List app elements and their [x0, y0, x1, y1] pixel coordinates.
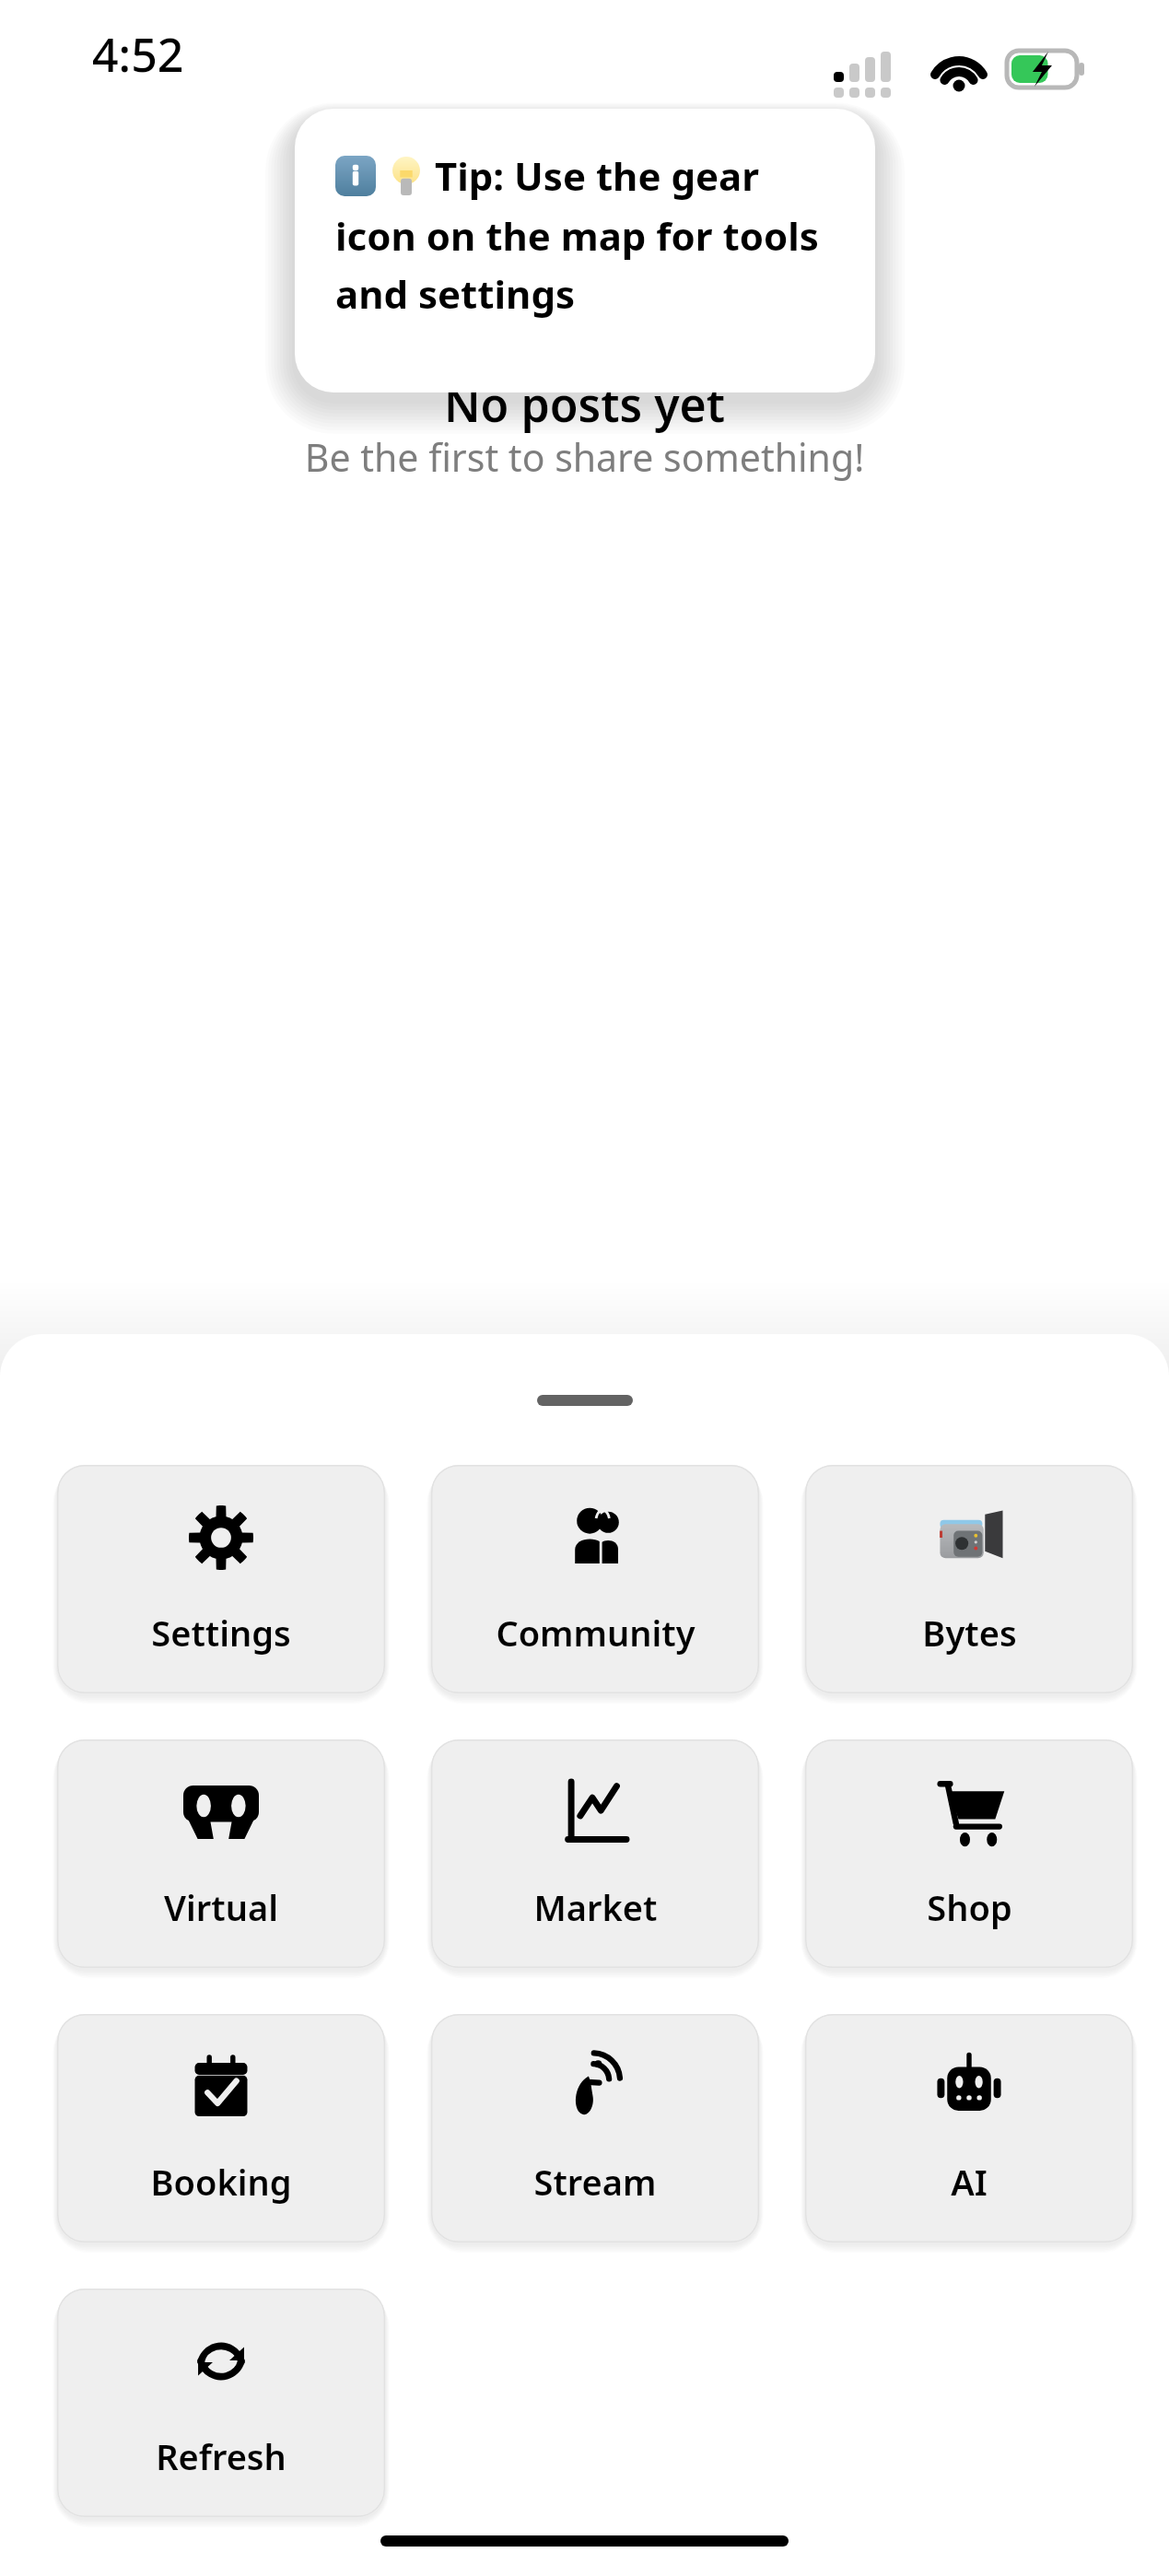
button[interactable]: Tip: Use the gear — [295, 109, 875, 392]
button[interactable]: Bytes — [805, 1465, 1133, 1693]
button[interactable]: Shop — [805, 1739, 1133, 1968]
staticText: Shop — [927, 1883, 1012, 1931]
staticText: Community — [496, 1609, 696, 1657]
staticText: AI — [951, 2158, 988, 2206]
staticText: Bytes — [922, 1609, 1017, 1657]
staticText: and settings — [335, 267, 576, 320]
staticText: Booking — [150, 2158, 292, 2206]
staticText: No posts yet — [0, 373, 1169, 436]
button[interactable]: Virtual — [57, 1739, 385, 1968]
staticText: Market — [533, 1883, 658, 1931]
button[interactable]: AI — [805, 2014, 1133, 2242]
staticText: Be the first to share something! — [0, 431, 1169, 483]
staticText: Refresh — [156, 2432, 286, 2480]
staticText: Stream — [533, 2158, 657, 2206]
staticText: Settings — [151, 1609, 291, 1657]
button[interactable]: Booking — [57, 2014, 385, 2242]
button[interactable]: Stream — [431, 2014, 759, 2242]
button[interactable]: Drag handle — [537, 1395, 633, 1406]
button[interactable]: Settings — [57, 1465, 385, 1693]
staticText: Tip: Use the gear — [435, 149, 759, 202]
button[interactable]: Market — [431, 1739, 759, 1968]
button[interactable]: Refresh — [57, 2289, 385, 2517]
staticText: Virtual — [164, 1883, 278, 1931]
button[interactable]: Community — [431, 1465, 759, 1693]
staticText: 4:52 — [92, 23, 184, 86]
staticText: icon on the map for tools — [335, 209, 819, 262]
